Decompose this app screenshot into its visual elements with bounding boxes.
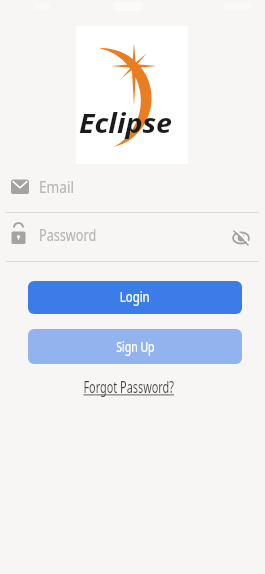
staticText: Sign Up [116, 336, 155, 356]
button[interactable]: Login [28, 281, 242, 314]
button[interactable]: Password [0, 217, 265, 261]
button[interactable]: Forgot Password? [0, 375, 265, 399]
staticText: Eclipse [79, 105, 172, 140]
button[interactable]: Email [0, 168, 265, 212]
staticText: Forgot Password? [83, 376, 174, 398]
button[interactable] [227, 224, 255, 252]
staticText: Password [39, 224, 97, 246]
button[interactable]: Sign Up [28, 329, 242, 364]
staticText: Login [120, 286, 150, 306]
staticText: Email [39, 176, 75, 198]
